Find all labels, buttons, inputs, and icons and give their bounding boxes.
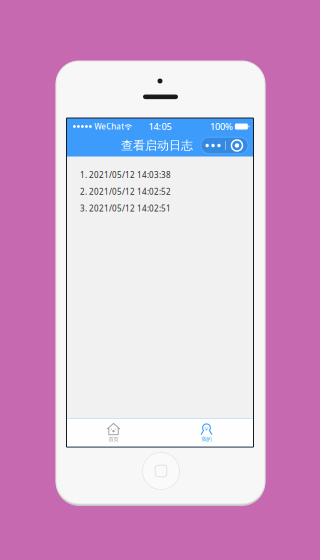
staticText: 查看启动日志 (121, 138, 193, 153)
button[interactable]: 我的 (160, 418, 253, 446)
staticText: WeChat (94, 121, 124, 132)
staticText: 3. 2021/05/12 14:02:51 (80, 203, 171, 214)
staticText: 2. 2021/05/12 14:02:52 (80, 186, 171, 197)
staticText: 100% (210, 120, 233, 133)
button[interactable]: 首页 (67, 418, 160, 446)
staticText: 首页 (108, 436, 118, 443)
staticText: 我的 (201, 436, 211, 443)
button[interactable]: More options (201, 137, 248, 154)
staticText: 1. 2021/05/12 14:03:38 (80, 170, 171, 180)
staticText: 14:05 (148, 120, 171, 133)
